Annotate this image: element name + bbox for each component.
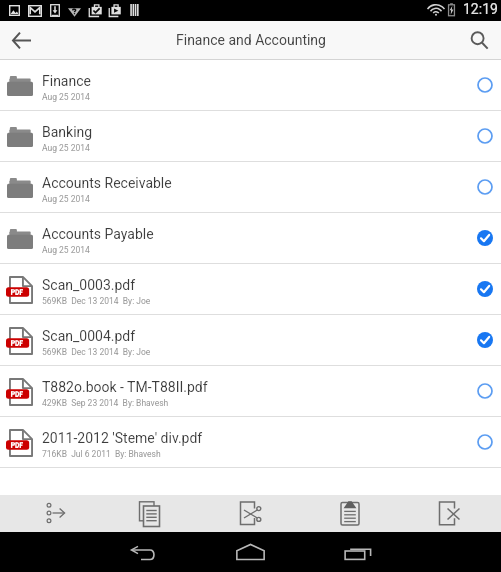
staticText: T882o.book - TM-T88II.pdf — [42, 379, 208, 395]
button[interactable]: Home — [208, 532, 292, 572]
staticText: Accounts Payable — [42, 226, 154, 242]
staticText: 569KB Dec 13 2014 By: Joe — [42, 296, 151, 306]
staticText: Accounts Receivable — [42, 175, 172, 191]
staticText: Finance — [42, 73, 91, 89]
staticText: 429KB Sep 23 2014 By: Bhavesh — [42, 398, 169, 408]
staticText: 12:19 — [463, 1, 498, 17]
staticText: Scan_0004.pdf — [42, 328, 136, 344]
button[interactable]: Scan_0003.pdf — [0, 264, 501, 315]
button[interactable]: Back — [0, 21, 42, 59]
staticText: Aug 25 2014 — [42, 92, 90, 102]
button[interactable]: Recents — [316, 532, 400, 572]
button[interactable]: Finance — [0, 60, 501, 111]
staticText: Scan_0003.pdf — [42, 277, 136, 293]
button[interactable]: Search — [457, 21, 501, 59]
staticText: 569KB Dec 13 2014 By: Joe — [42, 347, 151, 357]
staticText: Aug 25 2014 — [42, 143, 90, 153]
button[interactable]: Select — [469, 367, 501, 417]
staticText: Aug 25 2014 — [42, 245, 90, 255]
button[interactable]: Select — [469, 418, 501, 468]
staticText: Finance and Accounting — [176, 32, 326, 48]
staticText: Banking — [42, 124, 93, 140]
button[interactable]: Scan_0004.pdf — [0, 315, 501, 366]
button[interactable]: Back — [102, 532, 186, 572]
button[interactable]: Selected — [469, 214, 501, 264]
button[interactable]: T882o.book - TM-T88II.pdf — [0, 366, 501, 417]
button[interactable]: 2011-2012 'Steme' div.pdf — [0, 417, 501, 468]
button[interactable]: Banking — [0, 111, 501, 162]
button[interactable]: Move — [23, 495, 89, 532]
staticText: 716KB Jul 6 2011 By: Bhavesh — [42, 449, 161, 459]
button[interactable]: Select — [469, 163, 501, 213]
button[interactable]: Selected — [469, 316, 501, 366]
button[interactable]: Selected — [469, 265, 501, 315]
button[interactable]: Accounts Receivable — [0, 162, 501, 213]
staticText: Aug 25 2014 — [42, 194, 90, 204]
button[interactable]: Delete — [417, 495, 483, 532]
button[interactable]: Accounts Payable — [0, 213, 501, 264]
button[interactable]: Paste — [317, 495, 383, 532]
button[interactable]: Cut — [218, 495, 284, 532]
staticText: 2011-2012 'Steme' div.pdf — [42, 430, 203, 446]
button[interactable]: Select — [469, 112, 501, 162]
button[interactable]: Select — [469, 61, 501, 111]
button[interactable]: Copy — [117, 495, 183, 532]
